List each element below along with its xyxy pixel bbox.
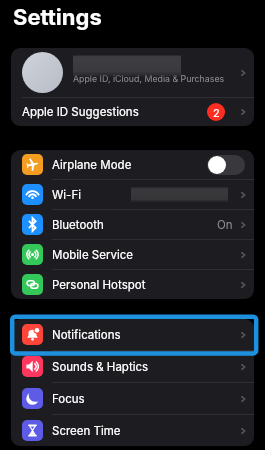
button[interactable]: Apple ID, iCloud, Media & Purchases: [11, 48, 254, 97]
button[interactable]: Sounds & Haptics: [11, 351, 254, 382]
staticText: Apple ID Suggestions: [22, 105, 139, 119]
button[interactable]: Wi-Fi: [11, 180, 254, 209]
staticText: Sounds & Haptics: [52, 360, 149, 374]
button[interactable]: Notifications: [11, 319, 254, 350]
staticText: Focus: [52, 392, 85, 406]
staticText: On: [217, 218, 233, 232]
button[interactable]: Screen Time: [11, 415, 254, 446]
button[interactable]: Apple ID Suggestions: [11, 98, 254, 126]
button[interactable]: Focus: [11, 383, 254, 414]
button[interactable]: Airplane Mode: [11, 150, 254, 179]
staticText: Airplane Mode: [52, 158, 132, 172]
staticText: 2: [213, 106, 220, 119]
staticText: Apple ID, iCloud, Media & Purchases: [73, 73, 225, 84]
staticText: Wi-Fi: [52, 188, 81, 202]
button[interactable]: Personal Hotspot: [11, 270, 254, 299]
button[interactable]: Bluetooth: [11, 210, 254, 239]
staticText: Screen Time: [52, 424, 121, 438]
staticText: Settings: [13, 4, 102, 31]
button[interactable]: Mobile Service: [11, 240, 254, 269]
staticText: Mobile Service: [52, 248, 133, 262]
staticText: Bluetooth: [52, 218, 104, 232]
staticText: Notifications: [52, 328, 121, 342]
staticText: Personal Hotspot: [52, 278, 146, 292]
